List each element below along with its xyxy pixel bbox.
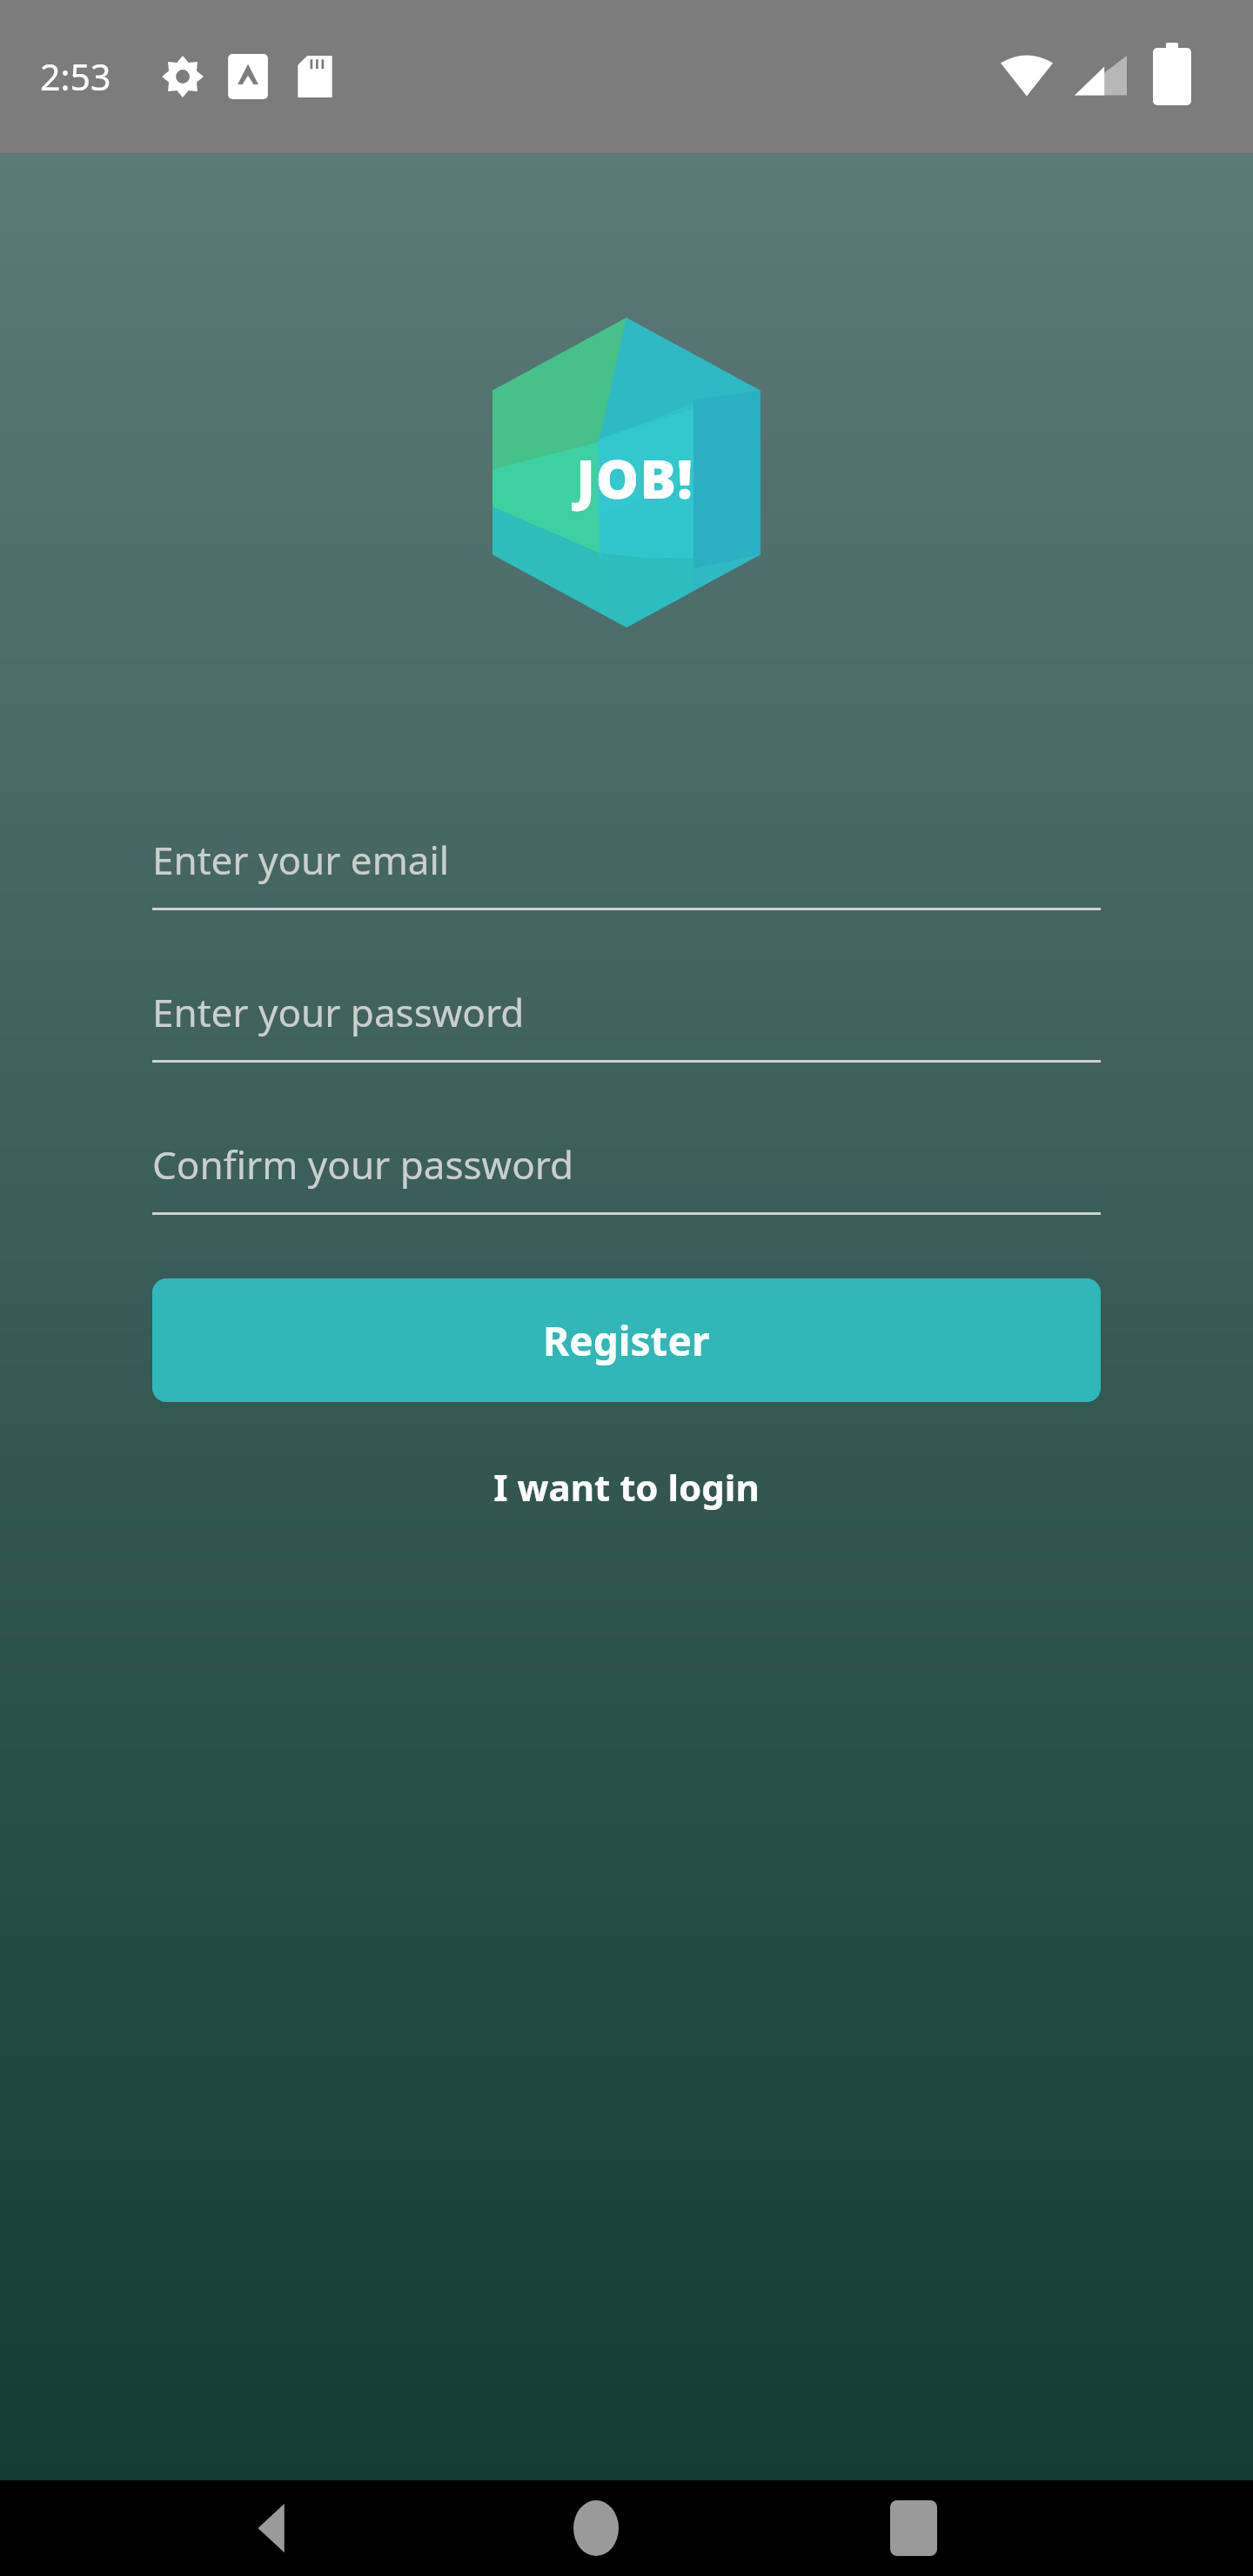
staticText: I want to login xyxy=(493,1462,760,1512)
staticText: Enter your password xyxy=(152,986,525,1038)
button[interactable]: Enter your email xyxy=(152,812,1101,910)
button[interactable]: Back xyxy=(200,2480,357,2576)
button[interactable]: Confirm your password xyxy=(152,1117,1101,1215)
button[interactable]: Register xyxy=(152,1278,1101,1402)
button[interactable]: I want to login xyxy=(152,1439,1101,1534)
staticText: Confirm your password xyxy=(152,1138,574,1191)
staticText: Enter your email xyxy=(152,834,450,886)
button[interactable]: Recent apps xyxy=(835,2480,992,2576)
button[interactable]: Enter your password xyxy=(152,964,1101,1063)
staticText: 2:53 xyxy=(40,52,111,101)
staticText: JOB! xyxy=(576,441,694,514)
staticText: Register xyxy=(543,1313,710,1368)
button[interactable]: Home xyxy=(518,2480,674,2576)
